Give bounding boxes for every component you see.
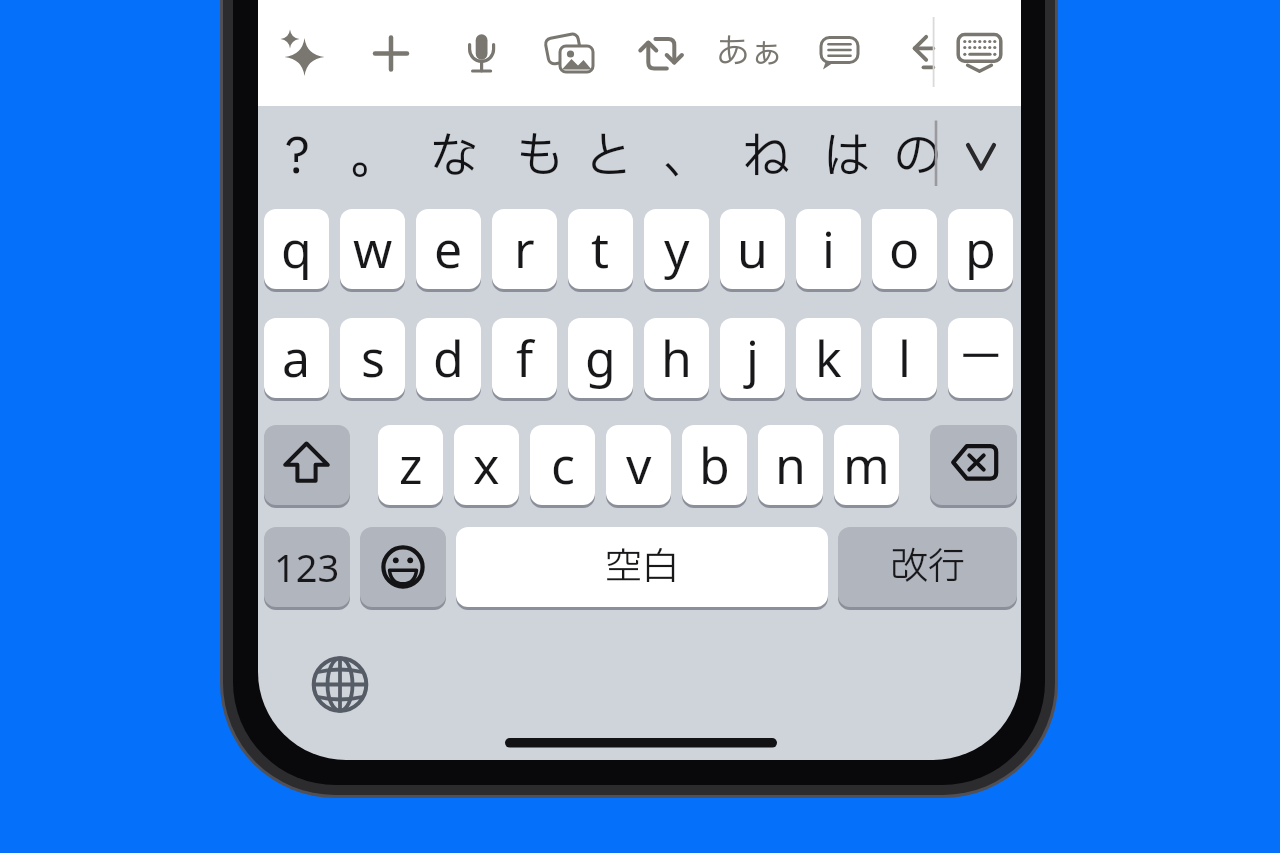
staticText: q (281, 215, 312, 283)
button[interactable]: x (454, 425, 519, 505)
button[interactable]: は (808, 112, 884, 202)
button[interactable]: v (606, 425, 671, 505)
staticText: a (282, 324, 311, 392)
button[interactable]: と (571, 112, 647, 202)
button[interactable] (537, 14, 605, 94)
staticText: あぁ (716, 27, 784, 78)
staticText: c (551, 431, 575, 499)
button[interactable]: h (644, 318, 709, 398)
button[interactable]: 、 (650, 112, 726, 202)
button[interactable]: 改行 (838, 527, 1017, 607)
button[interactable] (627, 14, 695, 94)
staticText: u (737, 215, 768, 283)
button[interactable]: n (758, 425, 823, 505)
staticText: b (699, 431, 730, 499)
button[interactable]: な (416, 112, 492, 202)
staticText: f (516, 324, 534, 392)
button[interactable] (360, 527, 446, 607)
button[interactable]: q (264, 209, 329, 289)
staticText: の (893, 121, 943, 194)
button[interactable]: p (948, 209, 1013, 289)
staticText: 空白 (605, 540, 679, 595)
button[interactable]: g (568, 318, 633, 398)
button[interactable]: c (530, 425, 595, 505)
button[interactable]: w (340, 209, 405, 289)
button[interactable]: d (416, 318, 481, 398)
button[interactable]: o (872, 209, 937, 289)
button[interactable]: ね (729, 112, 805, 202)
staticText: g (585, 324, 616, 392)
button[interactable]: 123 (264, 527, 350, 607)
staticText: t (591, 215, 610, 283)
staticText: と (584, 121, 634, 194)
staticText: z (399, 431, 423, 499)
button[interactable]: j (720, 318, 785, 398)
button[interactable] (950, 112, 1014, 202)
staticText: x (473, 431, 500, 499)
button[interactable] (357, 14, 425, 94)
button[interactable]: ? (259, 112, 335, 202)
button[interactable]: u (720, 209, 785, 289)
staticText: p (965, 215, 996, 283)
staticText: w (353, 215, 393, 283)
button[interactable]: の (880, 112, 956, 202)
button[interactable] (889, 14, 957, 94)
button[interactable]: y (644, 209, 709, 289)
staticText: e (434, 215, 463, 283)
button[interactable]: i (796, 209, 861, 289)
staticText: な (429, 121, 479, 194)
button[interactable]: 空白 (456, 527, 828, 607)
staticText: m (843, 431, 890, 499)
staticText: y (664, 215, 690, 283)
staticText: k (815, 324, 842, 392)
staticText: v (626, 431, 652, 499)
button[interactable] (447, 14, 515, 94)
staticText: d (433, 324, 464, 392)
staticText: ? (285, 121, 310, 194)
button[interactable] (930, 425, 1017, 505)
button[interactable] (269, 14, 337, 94)
button[interactable]: e (416, 209, 481, 289)
staticText: は (821, 121, 871, 194)
button[interactable]: t (568, 209, 633, 289)
button[interactable]: b (682, 425, 747, 505)
button[interactable] (264, 425, 350, 505)
button[interactable]: s (340, 318, 405, 398)
button[interactable]: 。 (337, 112, 413, 202)
staticText: 改行 (891, 540, 965, 595)
staticText: j (746, 324, 759, 392)
staticText: h (661, 324, 692, 392)
staticText: も (515, 121, 565, 194)
button[interactable] (716, 14, 784, 94)
staticText: 。 (350, 121, 400, 194)
staticText: i (822, 215, 835, 283)
button[interactable]: m (834, 425, 899, 505)
staticText: s (361, 324, 385, 392)
button[interactable]: l (872, 318, 937, 398)
button[interactable] (945, 14, 1013, 94)
staticText: ー (959, 325, 1003, 391)
staticText: r (514, 215, 535, 283)
staticText: n (775, 431, 806, 499)
button[interactable]: r (492, 209, 557, 289)
staticText: 123 (274, 541, 340, 593)
button[interactable]: も (502, 112, 578, 202)
button[interactable]: z (378, 425, 443, 505)
button[interactable]: k (796, 318, 861, 398)
button[interactable]: f (492, 318, 557, 398)
staticText: 、 (663, 121, 713, 194)
button[interactable]: a (264, 318, 329, 398)
button[interactable]: ー (948, 318, 1013, 398)
staticText: o (889, 215, 920, 283)
button[interactable] (806, 14, 874, 94)
staticText: l (898, 324, 911, 392)
button[interactable] (306, 650, 374, 718)
staticText: ね (742, 121, 792, 194)
